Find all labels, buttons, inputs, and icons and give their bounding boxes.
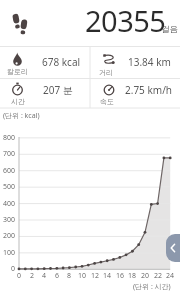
staticText: 678 kcal	[42, 55, 81, 69]
staticText: (단위 : 시간)	[133, 282, 171, 292]
staticText: 6	[55, 271, 60, 281]
staticText: 2.75 km/h	[125, 83, 173, 97]
staticText: 칼로리	[7, 67, 28, 76]
staticText: 12	[91, 271, 100, 281]
staticText: 거리	[99, 68, 113, 77]
staticText: 10	[78, 271, 87, 281]
button[interactable]	[166, 234, 180, 262]
staticText: 18	[128, 271, 137, 281]
staticText: (단위 : kcal)	[3, 111, 40, 121]
staticText: 20	[141, 271, 150, 281]
staticText: 속도	[100, 97, 114, 106]
staticText: 4	[42, 271, 47, 281]
staticText: 0	[11, 264, 16, 274]
staticText: 16	[116, 271, 125, 281]
staticText: 시간	[11, 97, 25, 106]
staticText: 13.84 km	[128, 55, 171, 69]
staticText: 100	[3, 248, 16, 258]
staticText: 700	[3, 149, 16, 159]
staticText: 0	[17, 271, 22, 281]
staticText: 8	[67, 271, 72, 281]
staticText: 200	[3, 231, 16, 241]
staticText: 14	[103, 271, 112, 281]
staticText: 207 분	[43, 83, 73, 97]
staticText: 22	[154, 271, 163, 281]
staticText: 800	[3, 133, 16, 143]
staticText: 500	[3, 182, 16, 192]
staticText: 2	[30, 271, 35, 281]
staticText: 600	[3, 166, 16, 176]
staticText: 300	[3, 215, 16, 225]
staticText: 24	[166, 271, 175, 281]
staticText: 400	[3, 199, 16, 209]
staticText: 걸음	[161, 24, 178, 35]
staticText: 20355	[85, 1, 166, 35]
